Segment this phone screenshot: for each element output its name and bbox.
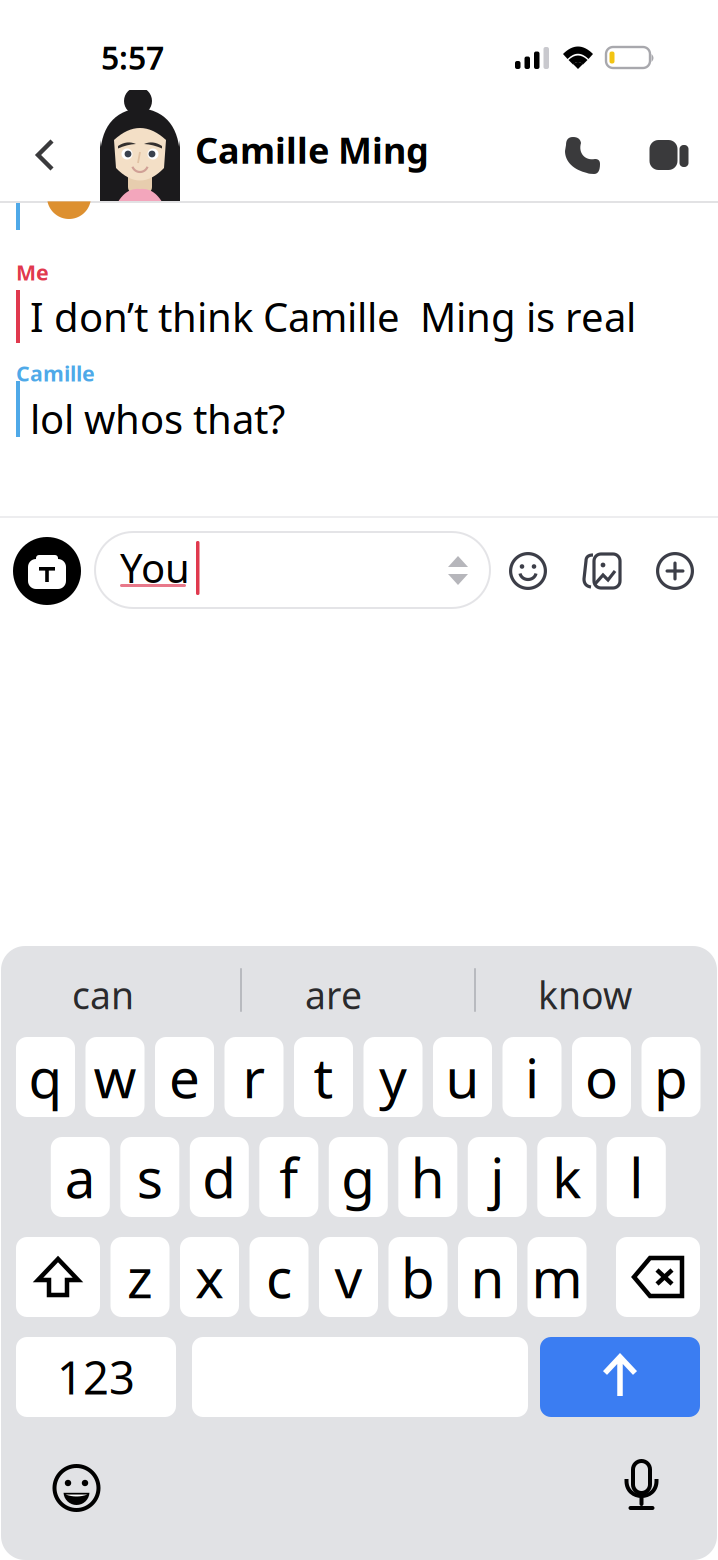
button[interactable]: Stickers <box>572 542 632 600</box>
button[interactable]: Dictate <box>625 1461 658 1511</box>
button[interactable]: Delete <box>616 1237 700 1317</box>
button[interactable]: n <box>458 1237 517 1317</box>
staticText: w <box>93 1041 136 1113</box>
button[interactable]: m <box>527 1237 586 1317</box>
staticText: lol whos that? <box>30 392 285 445</box>
staticText: z <box>127 1241 153 1313</box>
staticText: 5:57 <box>101 36 164 78</box>
staticText: c <box>266 1241 292 1313</box>
button[interactable]: Call <box>552 125 613 187</box>
staticText: are <box>305 970 362 1020</box>
button[interactable]: f <box>259 1137 318 1217</box>
staticText: e <box>169 1041 200 1113</box>
button[interactable]: Back <box>16 119 74 191</box>
staticText: l <box>629 1141 643 1213</box>
staticText: p <box>654 1041 688 1113</box>
staticText: n <box>470 1241 504 1313</box>
button[interactable]: c <box>249 1237 308 1317</box>
button[interactable]: d <box>190 1137 249 1217</box>
staticText: b <box>401 1241 435 1313</box>
staticText: I don’t think Camille Ming is real <box>30 290 636 343</box>
staticText: Camille <box>16 359 95 387</box>
staticText: r <box>242 1041 265 1113</box>
staticText: f <box>279 1141 298 1213</box>
staticText: q <box>28 1041 62 1113</box>
button[interactable]: o <box>572 1037 631 1117</box>
button[interactable]: t <box>294 1037 353 1117</box>
button[interactable]: b <box>388 1237 447 1317</box>
staticText: o <box>585 1041 618 1113</box>
staticText: a <box>65 1141 96 1213</box>
button[interactable]: y <box>363 1037 422 1117</box>
button[interactable]: Camera <box>13 537 81 605</box>
button[interactable]: Emoji keyboard <box>52 1464 101 1512</box>
staticText: g <box>341 1141 375 1213</box>
button[interactable]: Send <box>540 1337 700 1417</box>
button[interactable]: e <box>155 1037 214 1117</box>
button[interactable]: j <box>468 1137 527 1217</box>
staticText: d <box>202 1141 236 1213</box>
staticText: You <box>120 541 190 594</box>
staticText: v <box>334 1241 362 1313</box>
staticText: t <box>313 1041 333 1113</box>
button[interactable]: v <box>319 1237 378 1317</box>
button[interactable]: l <box>607 1137 666 1217</box>
button[interactable]: x <box>180 1237 239 1317</box>
staticText: h <box>411 1141 445 1213</box>
staticText: can <box>72 970 134 1020</box>
button[interactable]: Emoji <box>499 542 557 600</box>
button[interactable]: 123 <box>16 1337 176 1417</box>
staticText: i <box>525 1041 539 1113</box>
staticText: s <box>137 1141 163 1213</box>
staticText: x <box>195 1241 224 1313</box>
staticText: j <box>490 1141 504 1213</box>
button[interactable]: u <box>433 1037 492 1117</box>
button[interactable]: w <box>85 1037 144 1117</box>
button[interactable]: Shift <box>16 1237 100 1317</box>
button[interactable]: p <box>641 1037 700 1117</box>
staticText: Me <box>16 258 49 286</box>
button[interactable]: More <box>646 542 704 600</box>
button[interactable]: a <box>51 1137 110 1217</box>
button[interactable]: r <box>224 1037 283 1117</box>
staticText: know <box>538 970 632 1020</box>
button[interactable]: g <box>329 1137 388 1217</box>
staticText: y <box>379 1041 407 1113</box>
staticText: 123 <box>57 1347 135 1407</box>
button[interactable]: k <box>537 1137 596 1217</box>
button[interactable]: Video call <box>632 128 695 182</box>
staticText: u <box>445 1041 479 1113</box>
button[interactable]: z <box>110 1237 169 1317</box>
staticText: k <box>552 1141 581 1213</box>
staticText: Camille Ming <box>195 126 429 174</box>
button[interactable]: s <box>120 1137 179 1217</box>
staticText: m <box>531 1241 582 1313</box>
button[interactable]: q <box>16 1037 75 1117</box>
button[interactable]: h <box>398 1137 457 1217</box>
button[interactable]: i <box>502 1037 561 1117</box>
